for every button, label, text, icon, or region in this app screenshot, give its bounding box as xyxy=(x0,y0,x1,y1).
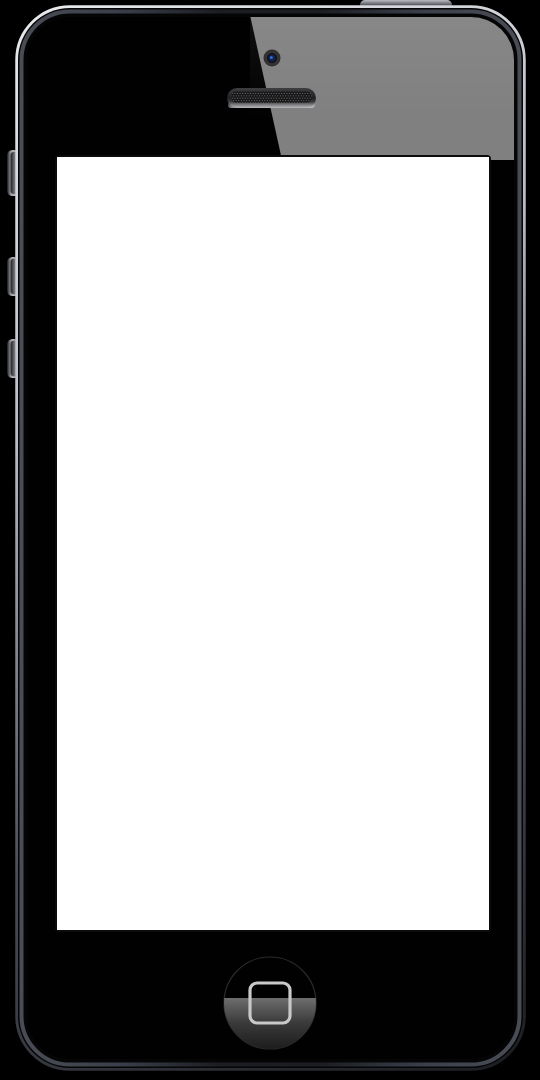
button[interactable]: Smartphone device illustration xyxy=(0,0,540,1080)
